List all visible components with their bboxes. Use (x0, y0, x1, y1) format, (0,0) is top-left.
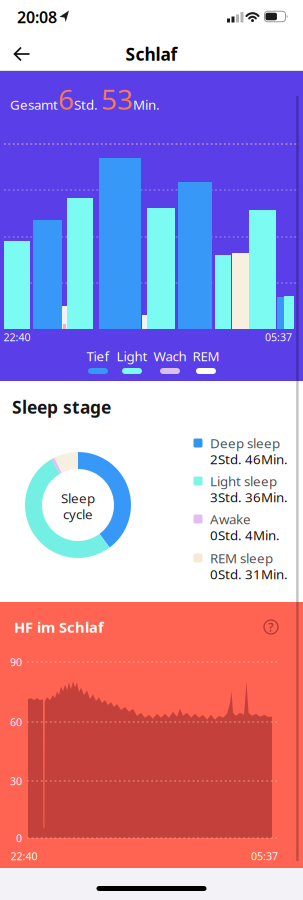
staticText: Schlaf (125, 42, 177, 65)
staticText: 05:37 (265, 330, 292, 344)
staticText: Std. (74, 96, 101, 113)
staticText: Wach (153, 347, 186, 365)
staticText: 0 (16, 831, 22, 845)
staticText: Min. (133, 96, 160, 113)
staticText: 60 (10, 715, 22, 729)
staticText: 20:08 (17, 6, 57, 28)
staticText: 22:40 (10, 849, 37, 863)
staticText: Tief (86, 347, 109, 365)
staticText: cycle (63, 505, 93, 523)
staticText: Awake (210, 510, 251, 528)
staticText: Light (116, 347, 147, 365)
staticText: ? (268, 619, 274, 635)
button[interactable]: Back (5, 39, 38, 69)
staticText: 53 (101, 80, 133, 118)
staticText: Sleep stage (12, 395, 111, 418)
button[interactable]: Help (260, 616, 282, 638)
staticText: REM (192, 347, 219, 365)
staticText: 2Std. 46Min. (210, 450, 288, 468)
staticText: Deep sleep (210, 434, 280, 452)
staticText: 3Std. 36Min. (210, 488, 288, 506)
staticText: Light sleep (210, 472, 277, 490)
staticText: 05:37 (251, 849, 278, 863)
staticText: 0Std. 31Min. (210, 565, 288, 583)
staticText: 90 (10, 655, 22, 669)
staticText: 22:40 (3, 330, 30, 344)
staticText: Sleep (61, 489, 95, 507)
staticText: 30 (10, 774, 22, 788)
staticText: REM sleep (210, 549, 273, 567)
staticText: 6 (58, 80, 74, 118)
staticText: Gesamt (10, 96, 58, 113)
staticText: HF im Schlaf (14, 617, 104, 637)
staticText: 0Std. 4Min. (210, 526, 280, 544)
